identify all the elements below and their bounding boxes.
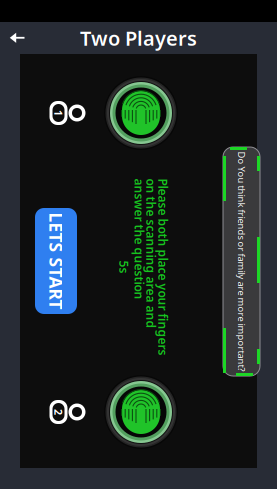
button[interactable]: Fingerprint scanner player 1	[104, 76, 178, 150]
staticText: 5s	[138, 279, 151, 295]
staticText: Do You think friends or family are more …	[131, 255, 277, 268]
button[interactable]: Back	[0, 22, 34, 54]
button[interactable]: Fingerprint scanner player 2	[104, 375, 178, 449]
staticText: 2	[55, 405, 61, 419]
staticText: Two Players	[80, 25, 197, 51]
staticText: Please both place your fingers on the sc…	[56, 241, 233, 280]
staticText: 1	[55, 106, 61, 120]
staticText: LETS START	[7, 249, 104, 272]
button[interactable]: LETS START	[35, 208, 77, 314]
